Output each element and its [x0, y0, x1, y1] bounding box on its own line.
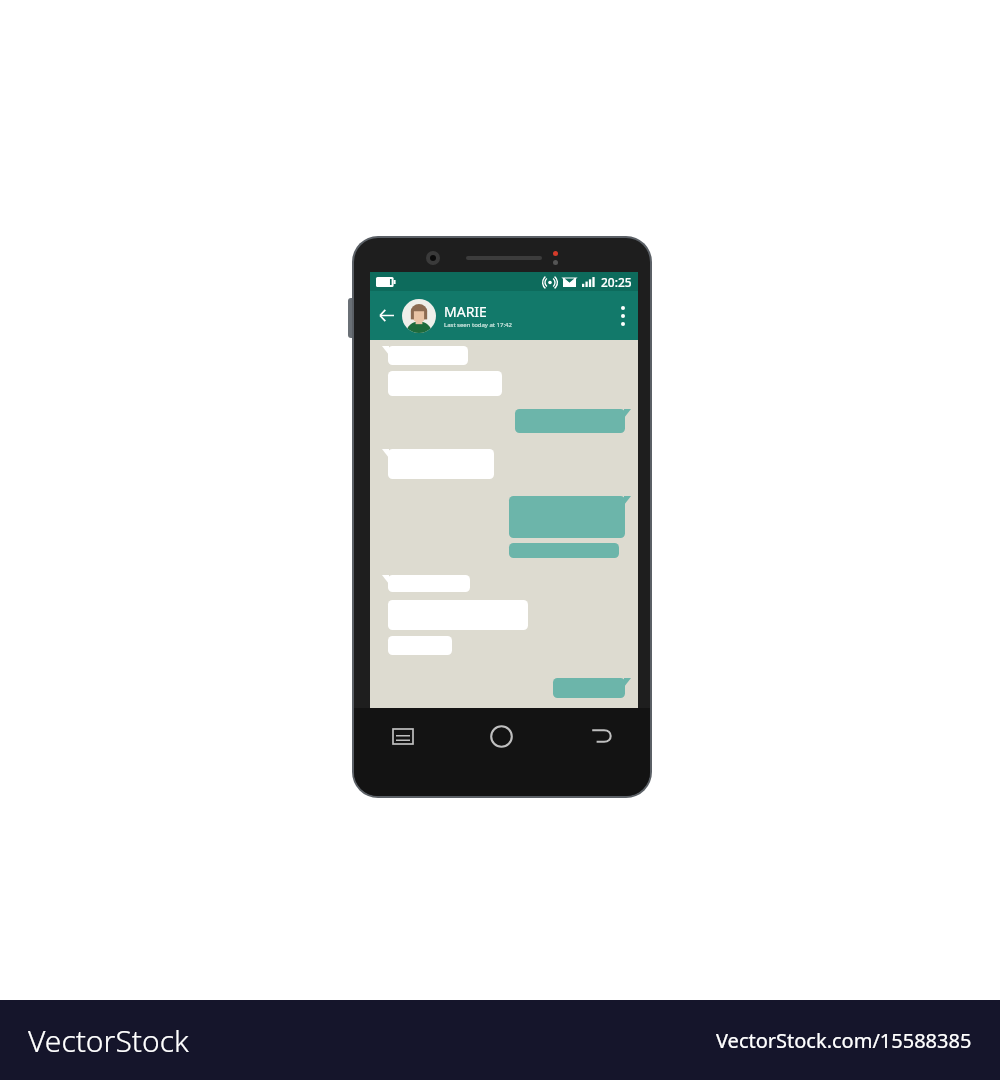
button[interactable] [382, 575, 470, 592]
button[interactable] [388, 636, 452, 655]
button[interactable] [382, 449, 494, 479]
staticText: MARIE [444, 302, 487, 321]
button[interactable]: Profile photo [402, 299, 436, 333]
button[interactable]: More options [608, 291, 638, 340]
staticText: 20:25 [601, 274, 632, 290]
button[interactable]: Back [370, 291, 402, 340]
button[interactable]: Recent apps [354, 708, 452, 764]
button[interactable] [509, 496, 631, 538]
button[interactable]: Home [452, 708, 551, 764]
button[interactable]: Back [551, 708, 650, 764]
button[interactable] [553, 678, 631, 698]
button[interactable] [382, 346, 468, 365]
staticText: VectorStock [28, 1020, 189, 1061]
button[interactable] [515, 409, 631, 433]
button[interactable] [388, 371, 502, 396]
staticText: VectorStock.com/15588385 [716, 1027, 972, 1054]
staticText: Last seen today at 17:42 [444, 321, 512, 329]
button[interactable] [509, 543, 619, 558]
